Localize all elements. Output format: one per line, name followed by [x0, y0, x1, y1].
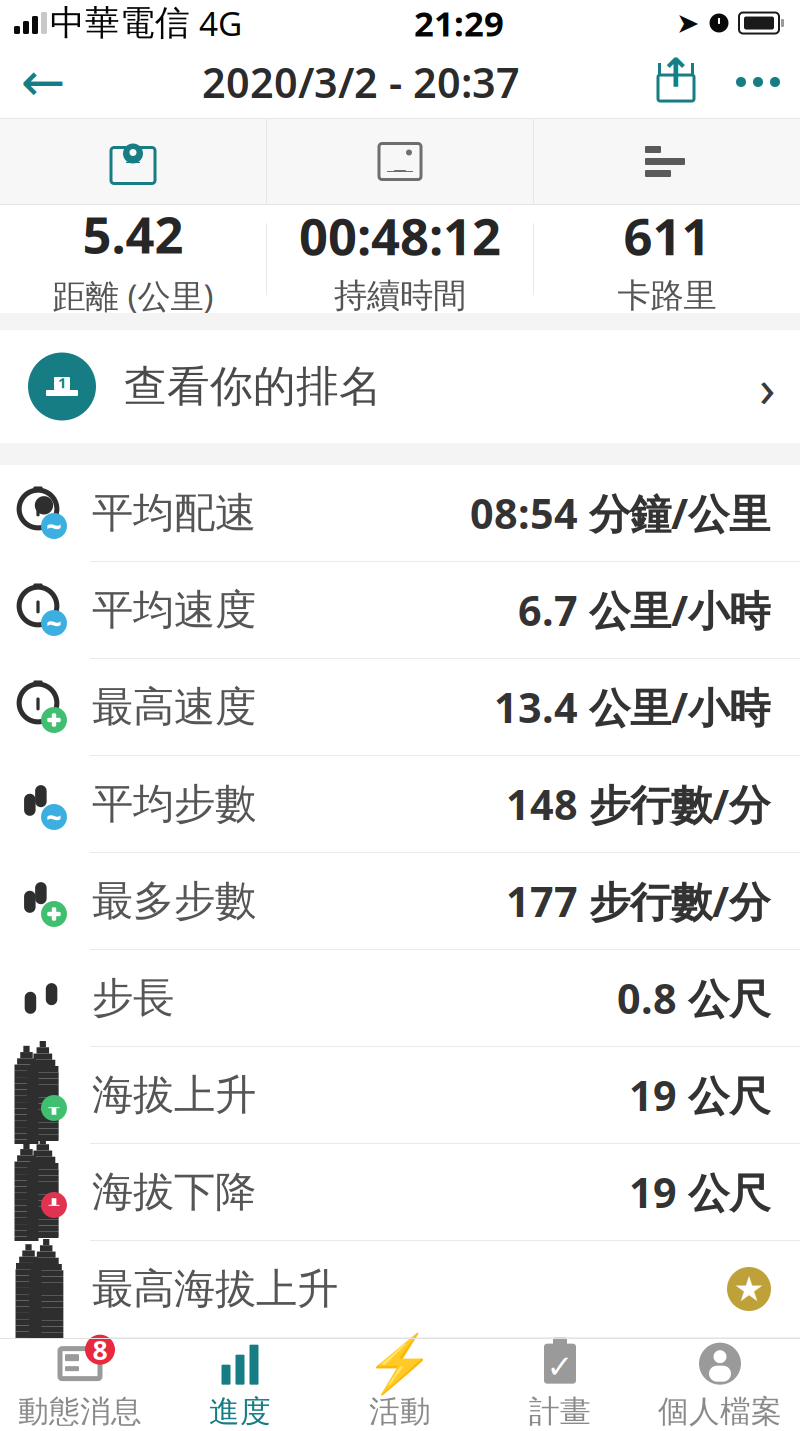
button[interactable]: 照片	[267, 118, 533, 204]
staticText: ⚡	[365, 1332, 435, 1396]
staticText: 611	[623, 202, 710, 269]
staticText: 08:54 分鐘/公里	[470, 486, 770, 540]
button[interactable]: 1	[0, 330, 800, 443]
button[interactable]: 海拔上升	[0, 1047, 800, 1144]
button[interactable]: 個人檔案	[640, 1338, 800, 1431]
staticText: 個人檔案	[658, 1393, 782, 1430]
staticText: 6.7 公里/小時	[518, 583, 770, 637]
button[interactable]: 地圖	[0, 118, 266, 204]
staticText: 5.42	[82, 200, 183, 267]
button[interactable]: ~	[0, 562, 800, 659]
staticText: 21:29	[414, 0, 504, 46]
staticText: 中華電信	[50, 2, 190, 44]
button[interactable]: ✓	[480, 1338, 640, 1431]
button[interactable]: 最高海拔上升	[0, 1241, 800, 1338]
staticText: 1	[58, 373, 66, 392]
staticText: 13.4 公里/小時	[494, 680, 770, 734]
staticText: ~	[46, 605, 62, 641]
button[interactable]: 圖表	[534, 118, 800, 204]
staticText: ➤	[676, 7, 699, 39]
button[interactable]: ~	[0, 465, 800, 562]
staticText: 持續時間	[334, 275, 466, 316]
staticText: 最高海拔上升	[92, 1264, 338, 1314]
staticText: ★	[733, 1269, 764, 1309]
button[interactable]: 最多步數	[0, 853, 800, 950]
staticText: ←	[20, 52, 65, 112]
staticText: 00:48:12	[299, 202, 501, 269]
button[interactable]: 返回	[0, 46, 86, 118]
button[interactable]: 進度	[160, 1338, 320, 1431]
staticText: 4G	[199, 1, 242, 45]
staticText: 步長	[92, 973, 174, 1023]
button[interactable]: 更多選項	[716, 46, 800, 118]
staticText: 動態消息	[18, 1393, 142, 1430]
staticText: 卡路里	[617, 275, 716, 316]
staticText: 19 公尺	[629, 1068, 770, 1122]
staticText: 海拔上升	[92, 1070, 256, 1120]
staticText: ↑	[659, 50, 693, 96]
staticText: ~	[46, 508, 62, 544]
staticText: 平均步數	[92, 779, 256, 829]
button[interactable]: 最高速度	[0, 659, 800, 756]
staticText: ✓	[546, 1348, 573, 1385]
staticText: 計畫	[529, 1393, 591, 1430]
button[interactable]: ⚡	[320, 1338, 480, 1431]
staticText: 2020/3/2 - 20:37	[202, 55, 520, 109]
staticText: 0.8 公尺	[617, 971, 770, 1025]
staticText: 最高速度	[92, 682, 256, 732]
staticText: 活動	[369, 1393, 431, 1430]
button[interactable]: 分享	[636, 46, 716, 118]
staticText: 海拔下降	[92, 1167, 256, 1217]
button[interactable]: ~	[0, 756, 800, 853]
button[interactable]: 8	[0, 1338, 160, 1431]
staticText: 148 步行數/分	[506, 777, 770, 831]
staticText: 8	[92, 1332, 107, 1367]
staticText: 查看你的排名	[124, 360, 382, 413]
staticText: 進度	[209, 1393, 271, 1430]
staticText: 平均配速	[92, 488, 256, 538]
staticText: 19 公尺	[629, 1165, 770, 1219]
staticText: 177 步行數/分	[506, 874, 770, 928]
staticText: 平均速度	[92, 585, 256, 635]
button[interactable]: 海拔下降	[0, 1144, 800, 1241]
staticText: ~	[46, 799, 62, 835]
staticText: 距離 (公里)	[52, 273, 213, 318]
staticText: 最多步數	[92, 876, 256, 926]
staticText: ›	[759, 351, 776, 422]
button[interactable]: 步長	[0, 950, 800, 1047]
